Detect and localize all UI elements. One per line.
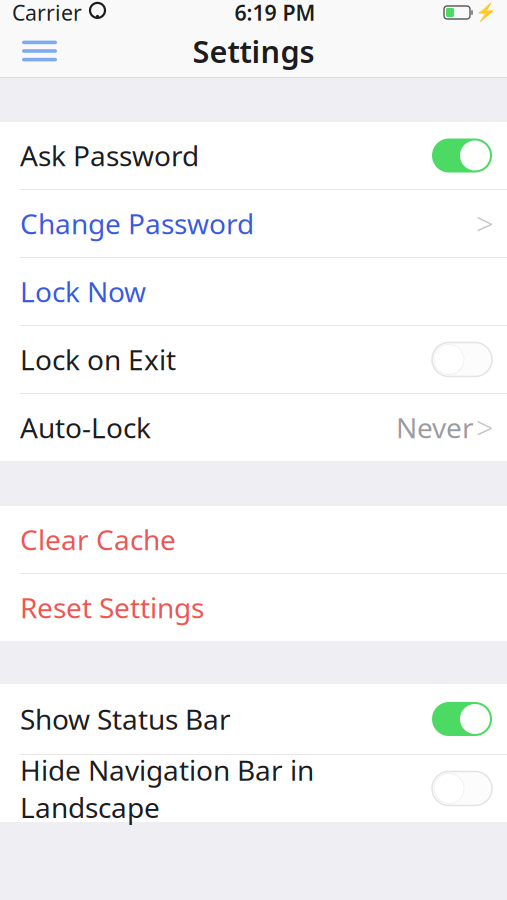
button[interactable]: Ask Password xyxy=(0,122,507,189)
staticText: Clear Cache xyxy=(20,521,176,558)
staticText: Show Status Bar xyxy=(20,700,231,738)
staticText: Never xyxy=(396,409,474,446)
staticText: > xyxy=(476,407,494,448)
staticText: Auto-Lock xyxy=(20,409,151,446)
button[interactable]: Lock Now xyxy=(0,258,507,325)
staticText: Ask Password xyxy=(20,137,199,174)
button[interactable]: Reset Settings xyxy=(0,574,507,641)
button[interactable]: Auto-Lock xyxy=(0,394,507,461)
staticText: Hide Navigation Bar in Landscape xyxy=(20,751,314,826)
staticText: > xyxy=(476,203,494,244)
button[interactable]: Menu xyxy=(10,26,69,75)
button[interactable]: Hide Navigation Bar in Landscape xyxy=(0,755,507,822)
staticText: ⚡ xyxy=(475,3,497,22)
staticText: Reset Settings xyxy=(20,589,204,626)
staticText: 6:19 PM xyxy=(234,0,315,27)
button[interactable]: Show Status Bar xyxy=(0,684,507,754)
button[interactable]: Clear Cache xyxy=(0,506,507,573)
staticText: Lock on Exit xyxy=(20,341,176,378)
staticText: Change Password xyxy=(20,205,254,242)
staticText: Lock Now xyxy=(20,273,146,310)
button[interactable]: Change Password xyxy=(0,190,507,257)
button[interactable]: Lock on Exit xyxy=(0,326,507,393)
staticText: Carrier xyxy=(12,0,82,27)
staticText: Settings xyxy=(192,31,314,71)
